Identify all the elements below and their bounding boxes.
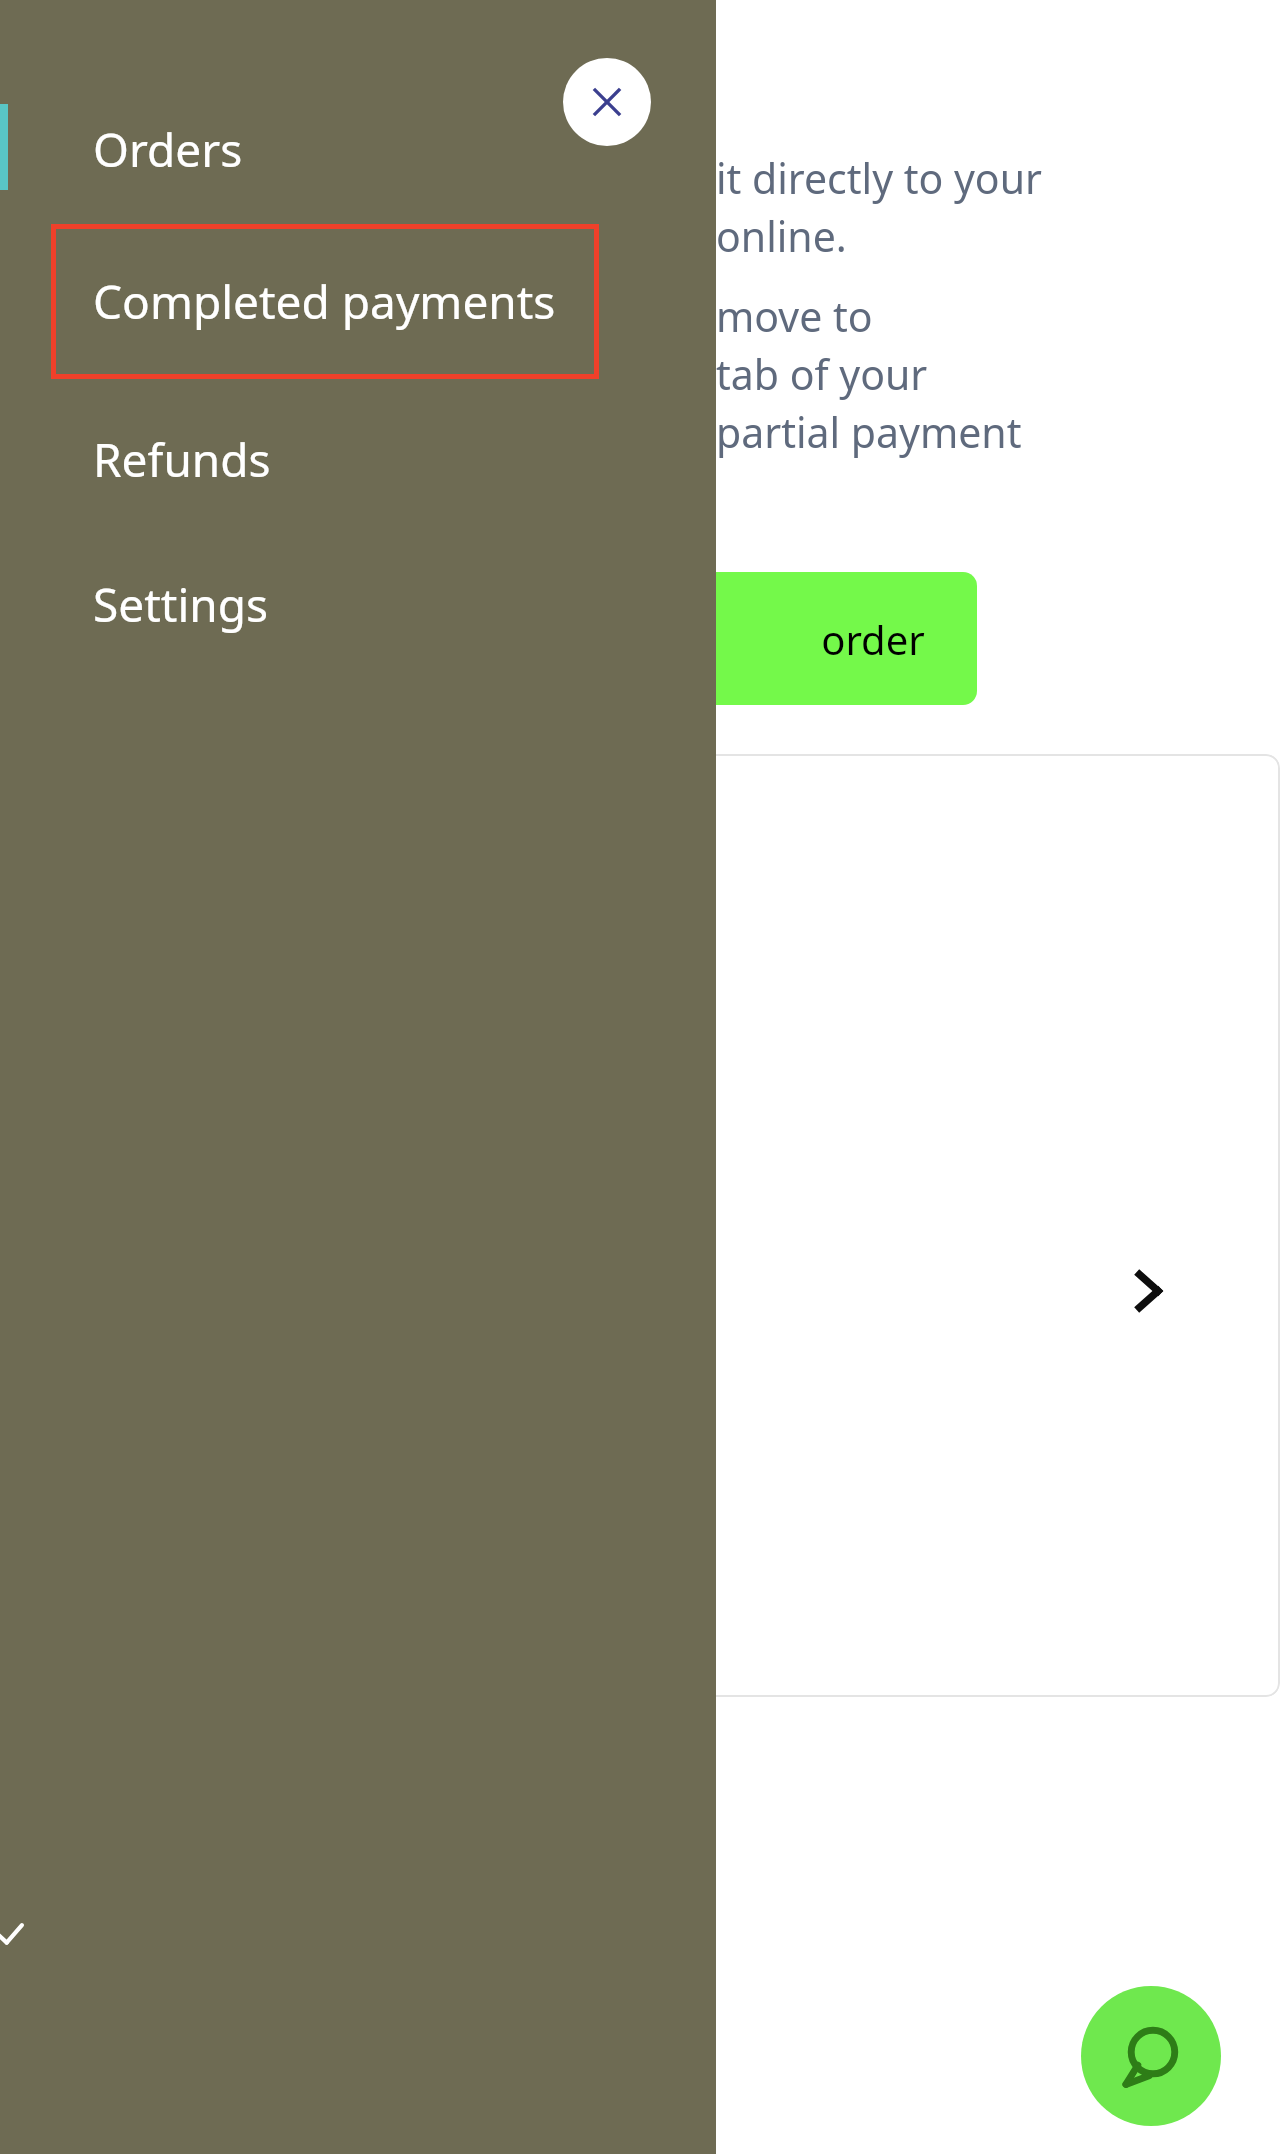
staticText: Completed payments <box>93 270 556 333</box>
staticText: Settings <box>93 573 269 636</box>
staticText: it directly to your online. <box>716 150 1042 264</box>
staticText: move to tab of your partial payment <box>716 288 1022 460</box>
staticText: Orders <box>93 118 243 181</box>
button[interactable]: Close menu <box>563 58 651 146</box>
button[interactable]: Refunds <box>0 403 716 515</box>
button[interactable]: Completed payments <box>51 224 599 379</box>
button[interactable]: order <box>645 572 977 705</box>
button[interactable]: Chat with us <box>1081 1986 1221 2126</box>
button[interactable]: Orders <box>0 93 716 205</box>
button[interactable]: Open details <box>630 754 1280 1697</box>
button[interactable]: Open details <box>1098 1241 1198 1341</box>
staticText: order <box>821 612 925 666</box>
staticText: Refunds <box>93 428 271 491</box>
button[interactable]: Settings <box>0 548 716 660</box>
